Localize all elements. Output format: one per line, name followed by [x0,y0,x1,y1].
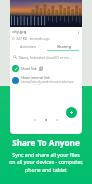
staticText: Share internal link [21,75,50,80]
staticText: 347 KB · seconds ago [16,36,50,41]
button[interactable]: More options [74,28,82,36]
button[interactable]: Activities [10,42,46,51]
staticText: Sync and share all your files on all you… [9,151,83,174]
staticText: city.jpg [12,29,27,35]
staticText: Activities [20,44,36,49]
staticText: Name, federated cloud ID or em... [19,55,72,59]
button[interactable]: Name, federated cloud ID or em... [13,53,82,61]
button[interactable]: Add [66,107,77,118]
button[interactable]: Share internal link [12,75,81,85]
button[interactable]: city.jpg [12,29,50,41]
staticText: Share link [21,66,37,71]
staticText: Sharing [57,44,72,49]
staticText: Internal link only works for users who h… [21,80,74,85]
button[interactable]: Sharing [46,42,82,51]
button[interactable]: Share link [12,64,81,73]
staticText: Share To Anyone [12,137,80,148]
